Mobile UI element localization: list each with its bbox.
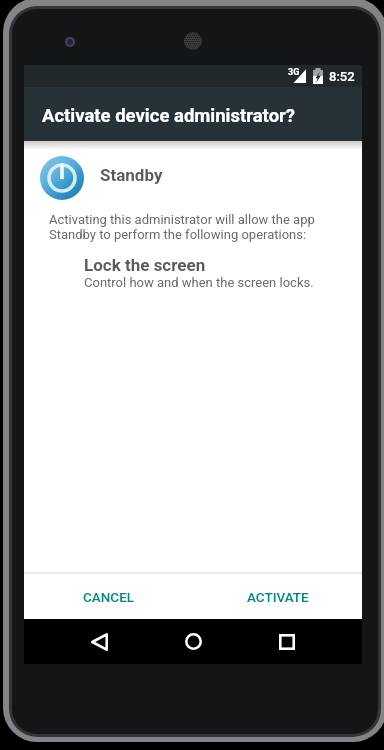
staticText: Activate device administrator? — [42, 105, 296, 127]
button[interactable]: CANCEL — [24, 574, 193, 619]
staticText: 3G — [288, 67, 300, 78]
button[interactable]: Recent apps — [262, 619, 311, 664]
button[interactable]: Back — [75, 619, 124, 664]
staticText: 8:52 — [329, 69, 355, 84]
button[interactable]: Home — [169, 619, 218, 664]
button[interactable]: ACTIVATE — [193, 574, 362, 619]
staticText: Control how and when the screen locks. — [84, 275, 314, 290]
staticText: Activating this administrator will allow… — [49, 212, 315, 242]
staticText: CANCEL — [83, 589, 135, 605]
staticText: ACTIVATE — [247, 589, 309, 605]
staticText: Lock the screen — [84, 255, 206, 275]
staticText: Standby — [100, 165, 163, 185]
